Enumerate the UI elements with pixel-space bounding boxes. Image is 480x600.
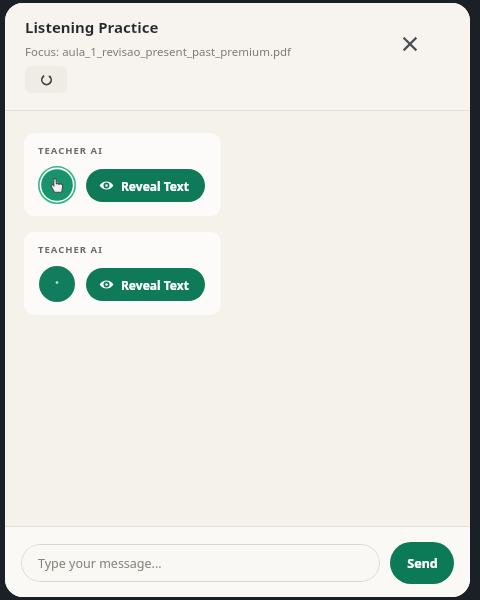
button[interactable]: TEACHER AI <box>24 133 221 216</box>
staticText: Focus: aula_1_revisao_present_past_premi… <box>25 44 292 60</box>
staticText: Reveal Text <box>121 277 189 293</box>
button[interactable]: Reveal Text <box>86 169 205 202</box>
button[interactable]: Play audio <box>38 166 76 204</box>
button[interactable]: Close <box>394 28 426 60</box>
staticText: Type your message... <box>38 555 162 572</box>
staticText: TEACHER AI <box>38 144 103 157</box>
staticText: TEACHER AI <box>38 243 103 256</box>
staticText: Send <box>407 555 438 572</box>
button[interactable]: Reveal Text <box>86 268 205 301</box>
button[interactable]: TEACHER AI <box>24 232 221 315</box>
button[interactable]: Refresh <box>25 66 67 93</box>
button[interactable]: Play audio <box>38 265 76 303</box>
staticText: Reveal Text <box>121 178 189 194</box>
button[interactable]: Send <box>390 542 454 584</box>
staticText: Listening Practice <box>25 17 159 37</box>
button[interactable]: Type your message... <box>21 544 380 582</box>
